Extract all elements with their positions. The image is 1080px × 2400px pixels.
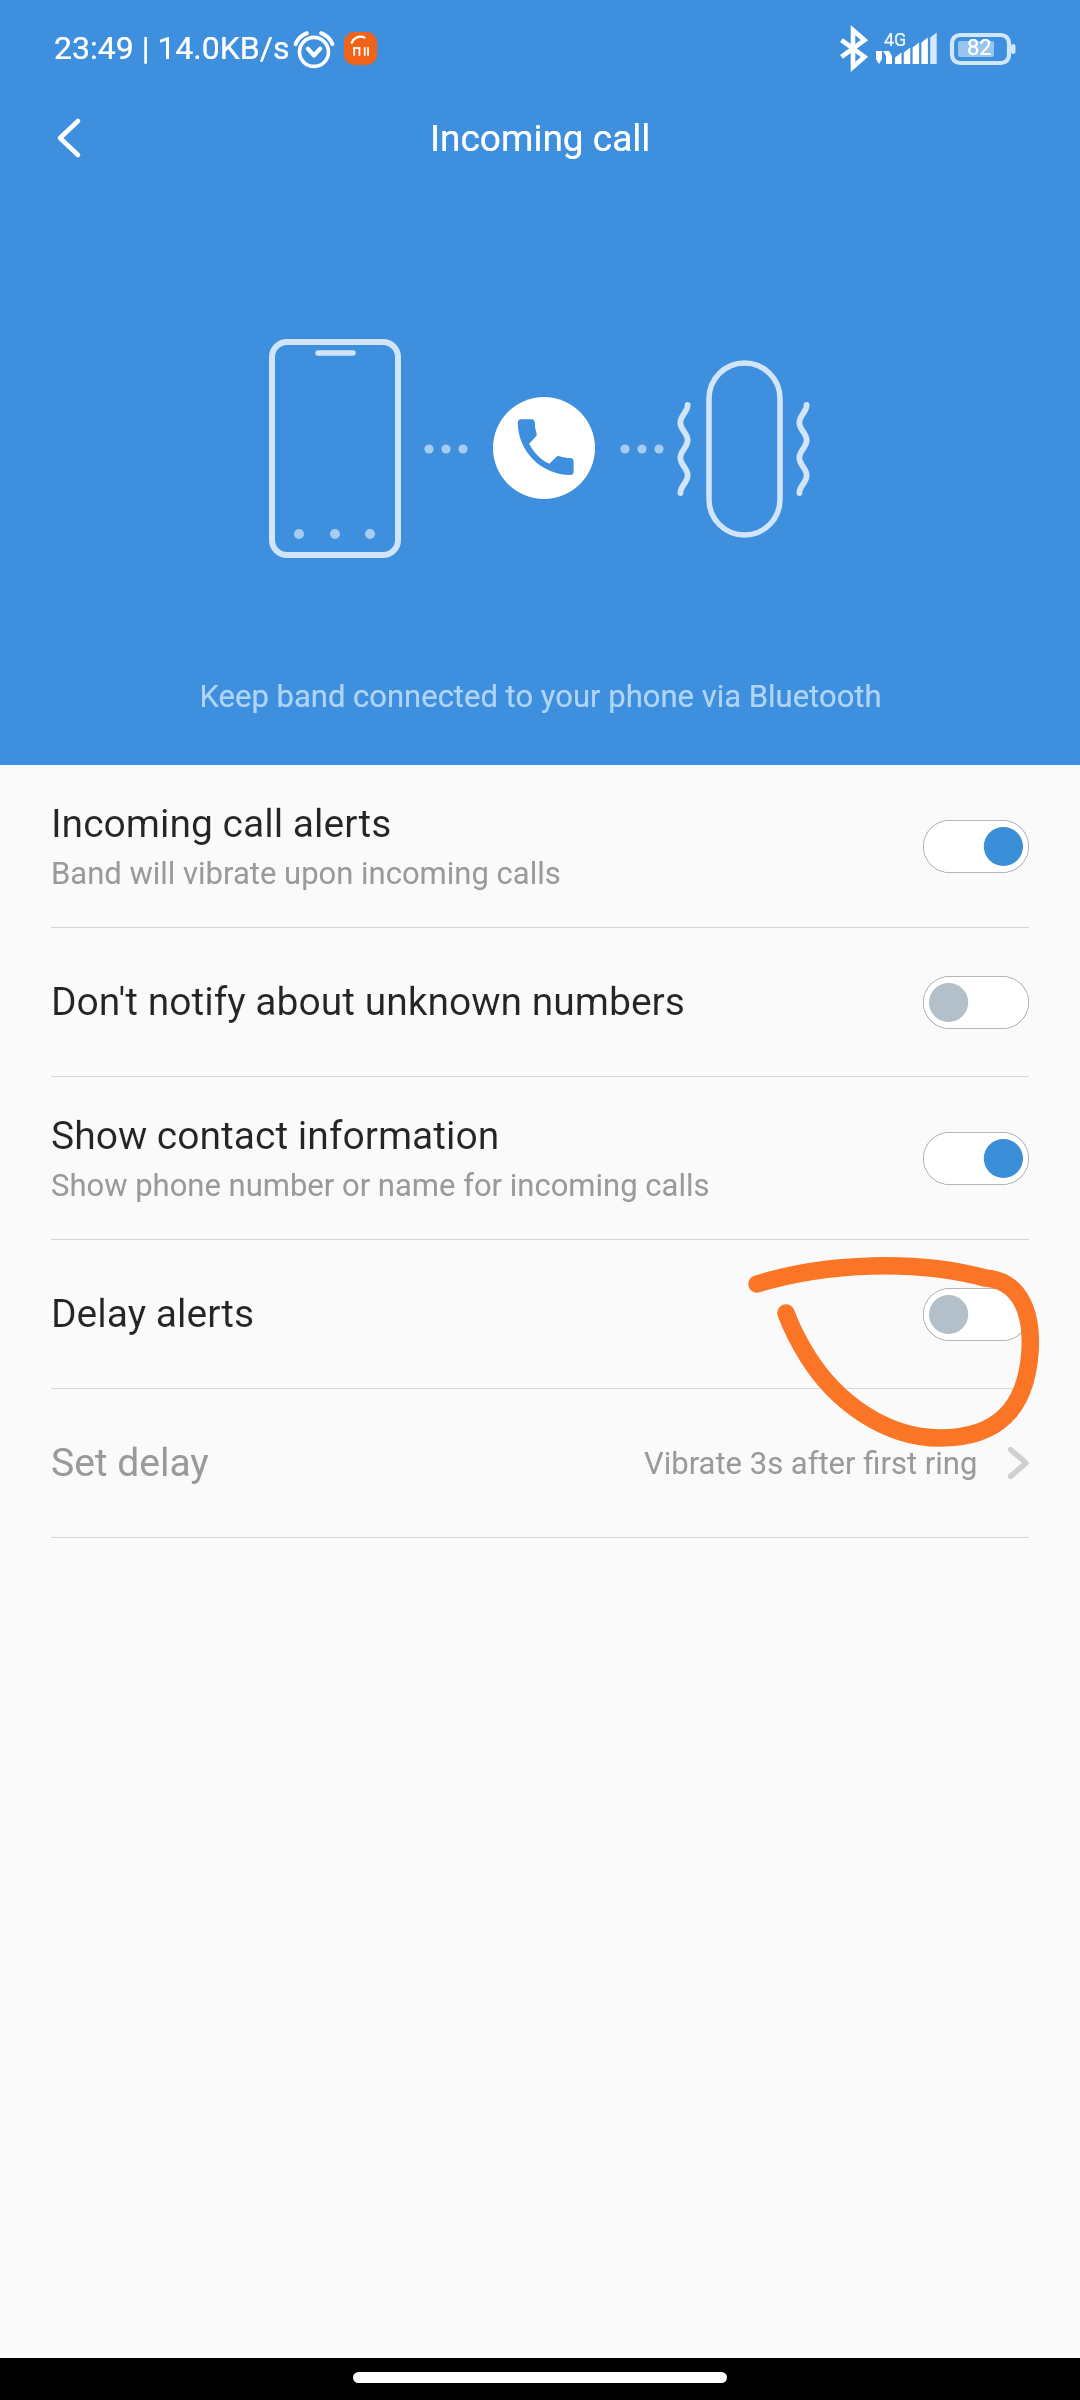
- staticText: Band will vibrate upon incoming calls: [51, 855, 561, 891]
- staticText: Vibrate 3s after first ring: [644, 1445, 978, 1481]
- button[interactable]: Don't notify about unknown numbers: [0, 928, 1080, 1076]
- staticText: 82: [967, 35, 992, 61]
- staticText: 4G: [884, 29, 907, 50]
- button[interactable]: Switch on: [923, 1132, 1029, 1185]
- button[interactable]: Switch off: [923, 1288, 1029, 1341]
- button[interactable]: Back: [33, 102, 105, 174]
- button[interactable]: Show contact information: [0, 1077, 1080, 1239]
- staticText: Delay alerts: [51, 1291, 255, 1337]
- button[interactable]: Incoming call alerts: [0, 765, 1080, 927]
- button[interactable]: Switch off: [923, 976, 1029, 1029]
- button[interactable]: Switch on: [923, 820, 1029, 873]
- staticText: Show phone number or name for incoming c…: [51, 1167, 710, 1203]
- staticText: Keep band connected to your phone via Bl…: [199, 678, 882, 714]
- staticText: Show contact information: [51, 1113, 500, 1159]
- button[interactable]: Delay alerts: [0, 1240, 1080, 1388]
- staticText: 23:49 | 14.0KB/s: [54, 29, 290, 67]
- button[interactable]: Set delay: [0, 1389, 1080, 1537]
- staticText: Set delay: [51, 1440, 209, 1486]
- staticText: Incoming call alerts: [51, 801, 392, 847]
- staticText: Don't notify about unknown numbers: [51, 979, 685, 1025]
- staticText: Incoming call: [430, 117, 651, 160]
